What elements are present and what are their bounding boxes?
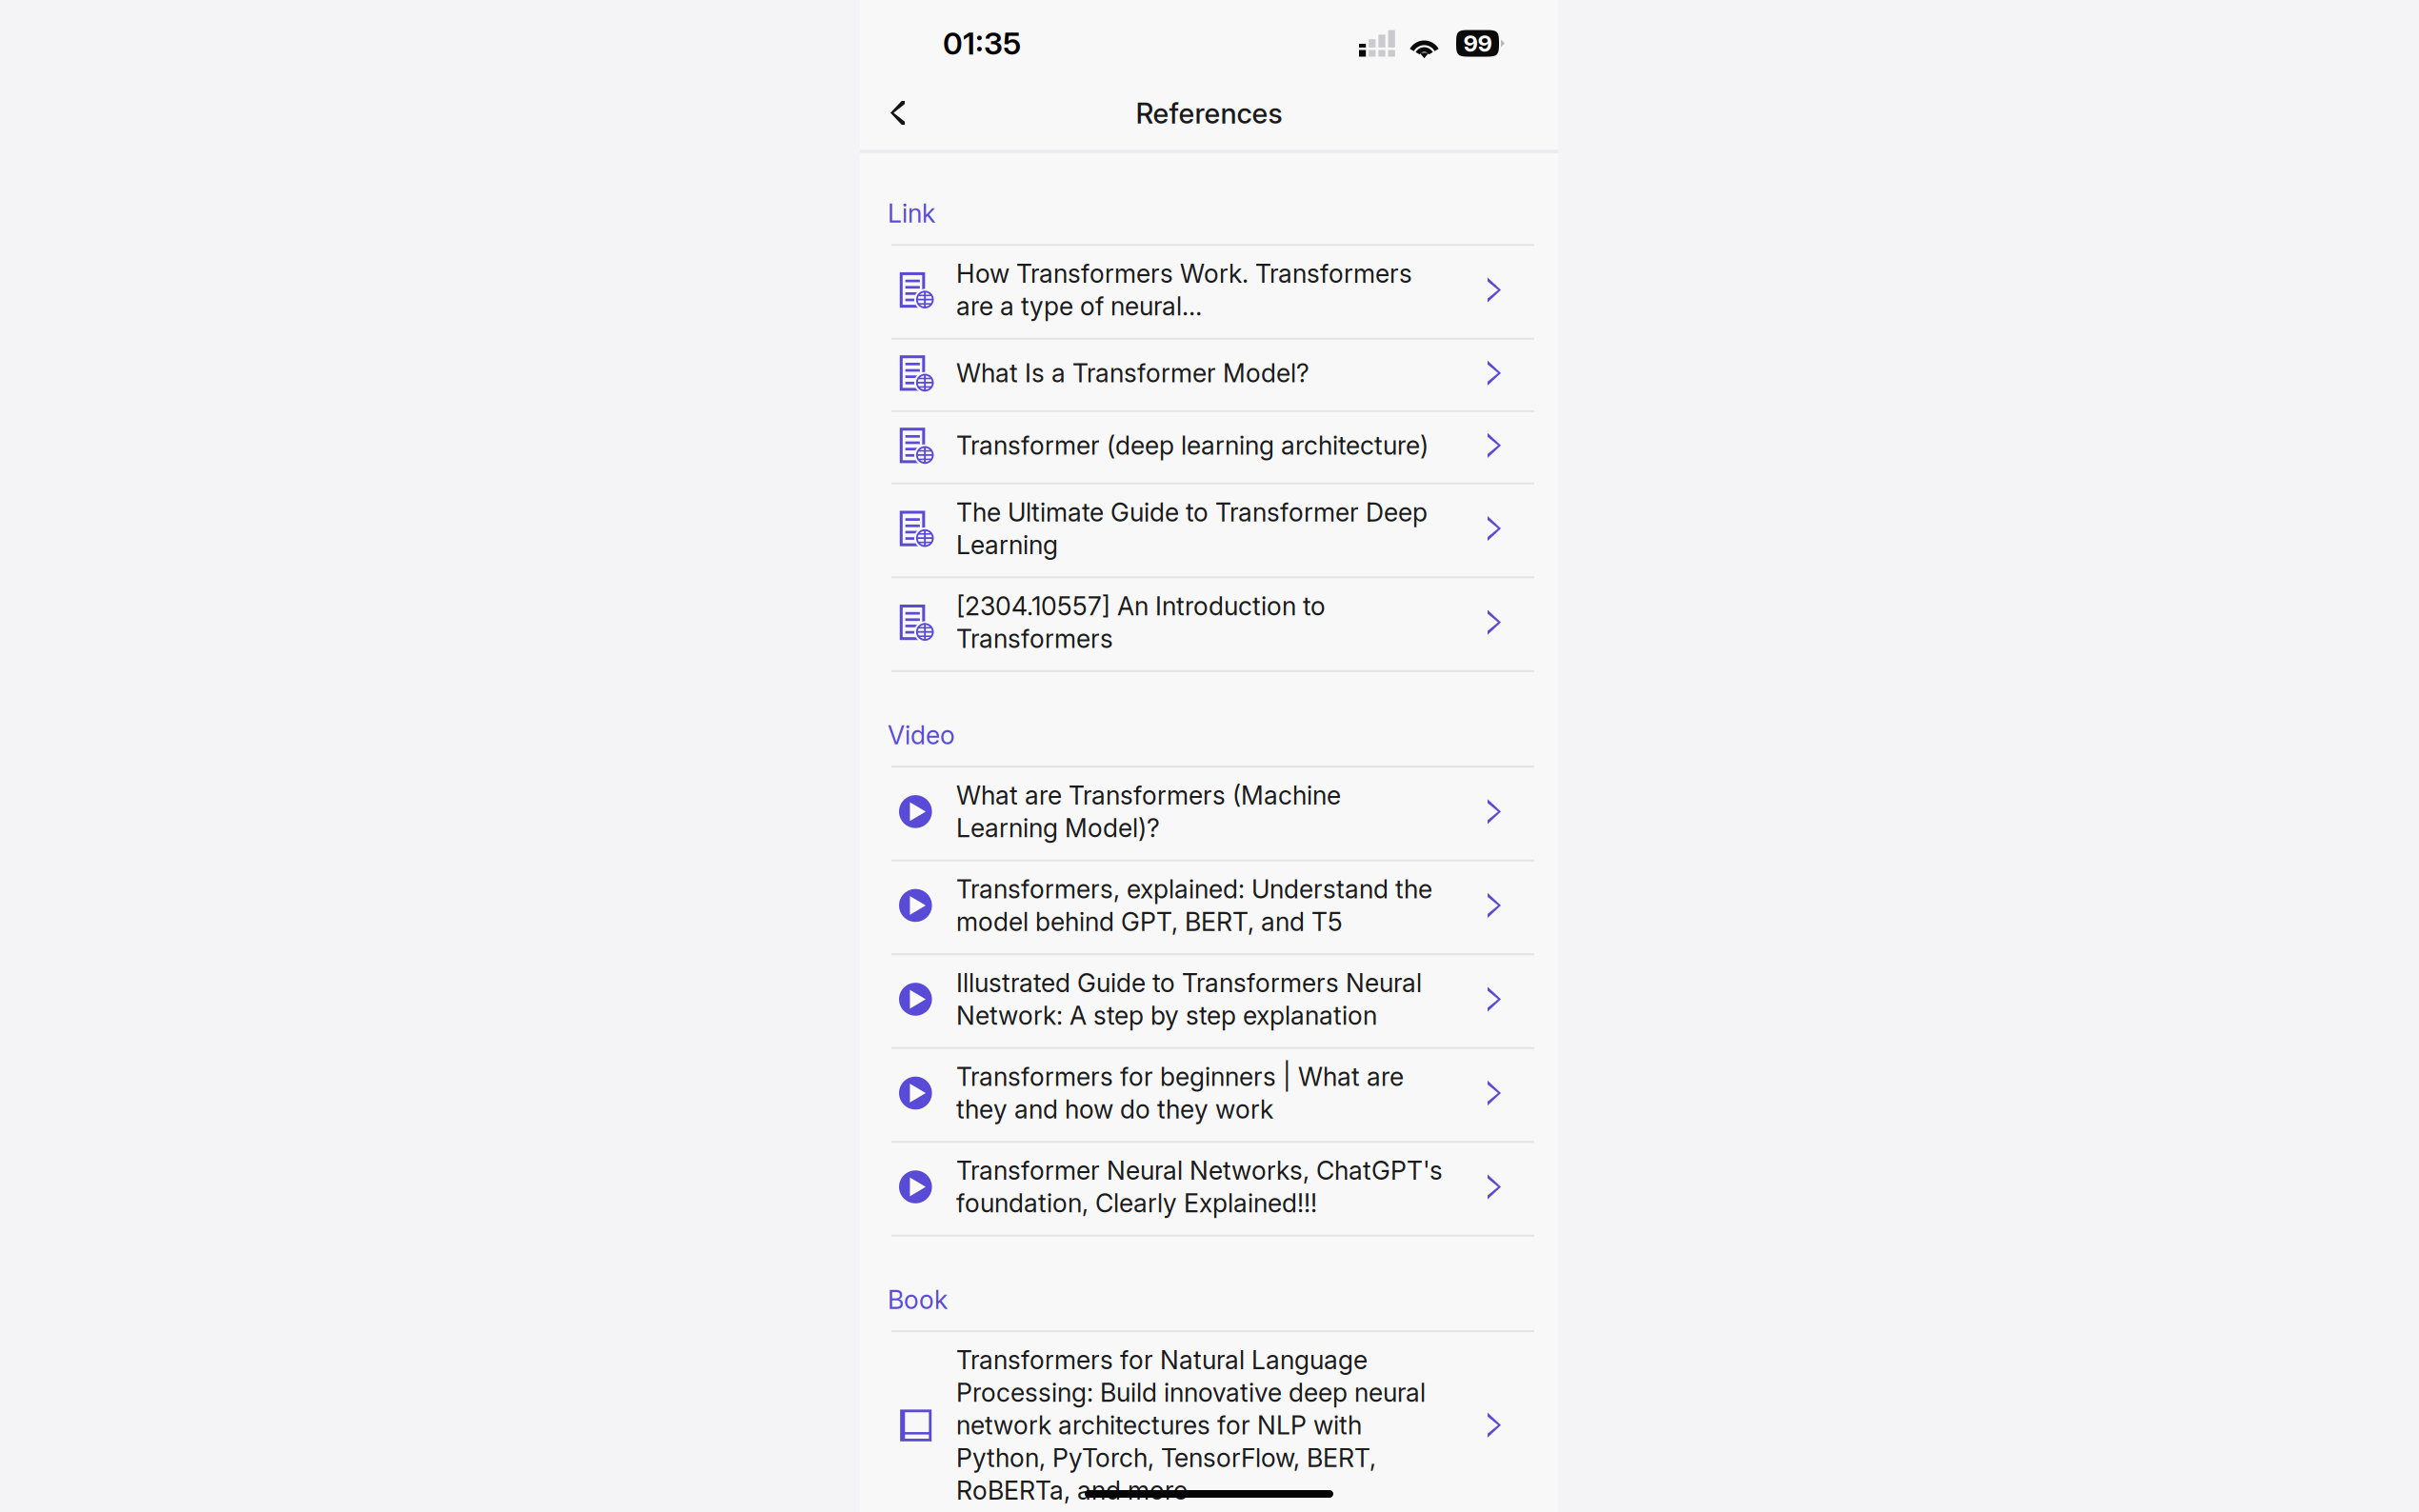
button[interactable]: How Transformers Work. Transformers are … [860,246,1558,338]
button[interactable]: What Is a Transformer Model? [860,340,1558,410]
staticText: Book [888,1284,948,1315]
button[interactable]: Transformers, explained: Understand the … [860,861,1558,953]
button[interactable]: Back [860,90,1558,137]
staticText: Transformer Neural Networks, ChatGPT's f… [956,1155,1443,1219]
button[interactable]: Transformer Neural Networks, ChatGPT's f… [860,1143,1558,1235]
staticText: The Ultimate Guide to Transformer Deep L… [956,497,1428,560]
staticText: 01:35 [943,25,1021,62]
staticText: Illustrated Guide to Transformers Neural… [956,968,1422,1031]
staticText: Video [888,720,955,750]
staticText: 99 [1463,30,1492,57]
staticText: [2304.10557] An Introduction to Transfor… [956,591,1326,654]
button[interactable]: Transformer (deep learning architecture) [860,412,1558,483]
staticText: How Transformers Work. Transformers are … [956,258,1412,322]
button[interactable]: [2304.10557] An Introduction to Transfor… [860,578,1558,670]
staticText: Transformers, explained: Understand the … [956,874,1432,937]
staticText: Transformers for beginners | What are th… [956,1061,1404,1125]
staticText: Link [888,198,935,229]
staticText: What are Transformers (Machine Learning … [956,780,1341,843]
staticText: What Is a Transformer Model? [956,358,1309,388]
button[interactable]: What are Transformers (Machine Learning … [860,768,1558,859]
button[interactable]: Transformers for Natural Language Proces… [860,1332,1558,1512]
staticText: Transformer (deep learning architecture) [956,430,1429,461]
staticText: References [1136,96,1282,130]
button[interactable]: The Ultimate Guide to Transformer Deep L… [860,484,1558,576]
staticText: Transformers for Natural Language Proces… [956,1345,1426,1506]
button[interactable]: Illustrated Guide to Transformers Neural… [860,955,1558,1047]
button[interactable]: Transformers for beginners | What are th… [860,1049,1558,1141]
